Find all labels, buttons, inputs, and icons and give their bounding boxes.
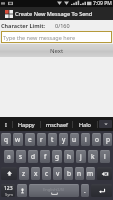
staticText: English(US) [43, 187, 65, 192]
button[interactable]: s [16, 150, 26, 163]
staticText: Halo [79, 121, 91, 128]
button[interactable]: Voice input [17, 184, 27, 197]
staticText: l [104, 152, 106, 161]
staticText: t [51, 135, 54, 144]
button[interactable]: m [86, 167, 95, 180]
button[interactable]: I [0, 117, 12, 131]
staticText: z [22, 169, 26, 178]
staticText: y [62, 135, 66, 144]
button[interactable]: r [37, 133, 46, 146]
staticText: u [72, 135, 77, 144]
button[interactable]: c [42, 167, 51, 180]
staticText: Character Limit: [1, 22, 46, 29]
staticText: Create New Message To Send [15, 10, 93, 18]
staticText: s [19, 152, 23, 161]
button[interactable]: Space [29, 184, 79, 197]
button[interactable]: j [76, 150, 86, 163]
button[interactable]: i [81, 133, 90, 146]
button[interactable]: n [75, 167, 84, 180]
button[interactable]: f [40, 150, 50, 163]
staticText: q [4, 135, 8, 144]
button[interactable]: h [64, 150, 74, 163]
button[interactable]: mschaef [41, 117, 72, 131]
button[interactable]: Symbols [1, 184, 15, 197]
staticText: b [67, 169, 71, 178]
staticText: m [87, 169, 94, 178]
button[interactable]: Shift [1, 167, 17, 180]
button[interactable]: Happy [13, 117, 40, 131]
staticText: a [7, 152, 11, 161]
staticText: i [85, 135, 87, 144]
staticText: 123 [4, 185, 13, 192]
staticText: . [84, 186, 86, 195]
staticText: p [106, 135, 110, 144]
staticText: o [95, 135, 99, 144]
staticText: f [44, 152, 47, 161]
staticText: g [55, 152, 59, 161]
button[interactable]: Next [0, 44, 113, 57]
staticText: k [91, 152, 95, 161]
button[interactable]: p [103, 133, 112, 146]
button[interactable]: q [1, 133, 11, 146]
staticText: Sym [5, 192, 13, 197]
button[interactable]: l [100, 150, 110, 163]
button[interactable]: u [70, 133, 79, 146]
button[interactable]: Backspace [97, 167, 112, 180]
button[interactable]: k [88, 150, 98, 163]
staticText: c [45, 169, 49, 178]
staticText: 7:09 PM [93, 0, 112, 7]
button[interactable]: Halo [73, 117, 97, 131]
button[interactable]: o [92, 133, 101, 146]
button[interactable]: . [81, 184, 89, 197]
staticText: x [34, 169, 38, 178]
staticText: v [56, 169, 60, 178]
staticText: Next [50, 47, 64, 55]
staticText: e [28, 135, 32, 144]
staticText: Happy [18, 121, 35, 128]
button[interactable]: b [64, 167, 73, 180]
button[interactable]: w [13, 133, 23, 146]
staticText: n [77, 169, 82, 178]
staticText: h [67, 152, 72, 161]
staticText: r [40, 135, 43, 144]
staticText: I [5, 121, 7, 128]
button[interactable]: v [53, 167, 62, 180]
button[interactable]: Type the new message here [1, 31, 112, 43]
staticText: mschaef [46, 121, 68, 128]
button[interactable]: x [31, 167, 40, 180]
staticText: Type the new message here [3, 34, 76, 41]
staticText: w [15, 135, 21, 144]
button[interactable]: z [19, 167, 29, 180]
button[interactable]: d [28, 150, 38, 163]
button[interactable]: t [48, 133, 57, 146]
button[interactable]: g [52, 150, 62, 163]
staticText: d [31, 152, 35, 161]
button[interactable]: y [59, 133, 68, 146]
staticText: 0/160 [55, 22, 70, 29]
button[interactable]: a [4, 150, 14, 163]
button[interactable]: e [25, 133, 35, 146]
staticText: j [80, 152, 82, 161]
button[interactable]: Enter [91, 184, 112, 197]
button[interactable]: More suggestions [99, 120, 112, 128]
